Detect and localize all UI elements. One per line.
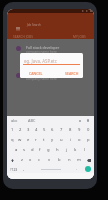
- button[interactable]: Voice input: [85, 118, 90, 123]
- button[interactable]: 5: [40, 125, 48, 135]
- staticText: 1: [11, 127, 14, 133]
- button[interactable]: a: [12, 145, 20, 155]
- button[interactable]: v: [44, 155, 54, 165]
- staticText: c: [38, 157, 41, 163]
- button[interactable]: 3: [24, 125, 32, 135]
- button[interactable]: l: [80, 145, 89, 155]
- staticText: j: [66, 147, 68, 153]
- button[interactable]: b: [54, 155, 64, 165]
- button[interactable]: 7: [57, 125, 66, 135]
- staticText: b: [58, 157, 61, 163]
- staticText: company name here: [26, 77, 57, 81]
- button[interactable]: 2: [16, 125, 24, 135]
- staticText: i: [70, 137, 72, 143]
- staticText: SEARCH: [65, 71, 79, 76]
- staticText: r: [35, 137, 37, 143]
- button[interactable]: SEARCH: [65, 71, 79, 76]
- staticText: abc: [11, 118, 18, 123]
- staticText: Job Search: [27, 23, 41, 27]
- button[interactable]: 0: [84, 125, 93, 135]
- button[interactable]: y: [48, 135, 57, 145]
- button[interactable]: p: [84, 135, 93, 145]
- staticText: e: [27, 137, 30, 143]
- staticText: ?123: [10, 167, 18, 172]
- button[interactable]: g: [44, 145, 53, 155]
- staticText: a: [15, 147, 18, 153]
- staticText: z: [21, 157, 23, 163]
- staticText: 3: [27, 127, 30, 133]
- button[interactable]: x: [26, 155, 35, 165]
- staticText: SEARCH JOBS: [13, 35, 33, 39]
- button[interactable]: .: [73, 165, 81, 173]
- button[interactable]: Enter: [81, 165, 94, 173]
- staticText: q: [11, 137, 14, 143]
- button[interactable]: 1: [8, 125, 16, 135]
- staticText: t: [43, 137, 45, 143]
- button[interactable]: w: [16, 135, 24, 145]
- button[interactable]: h: [53, 145, 62, 155]
- button[interactable]: SEARCH JOBS: [13, 35, 33, 39]
- staticText: g: [47, 147, 50, 153]
- staticText: v: [48, 157, 51, 163]
- button[interactable]: k: [71, 145, 80, 155]
- staticText: n: [68, 157, 71, 163]
- button[interactable]: 9: [75, 125, 84, 135]
- button[interactable]: CANCEL: [29, 71, 43, 76]
- button[interactable]: z: [17, 155, 26, 165]
- staticText: Full stack developer: [26, 72, 60, 77]
- button[interactable]: o: [75, 135, 84, 145]
- staticText: MY JOBS: [73, 35, 86, 39]
- staticText: Full stack developer: [26, 45, 60, 50]
- button[interactable]: Full stack developer: [7, 39, 94, 66]
- staticText: 0: [87, 127, 90, 133]
- staticText: d: [31, 147, 34, 153]
- staticText: company name here: [26, 50, 57, 54]
- staticText: eg. Java, ASP.etc: [24, 58, 57, 64]
- button[interactable]: d: [28, 145, 36, 155]
- button[interactable]: n: [64, 155, 74, 165]
- button[interactable]: ?123: [7, 165, 20, 173]
- staticText: CANCEL: [29, 71, 43, 76]
- button[interactable]: m: [74, 155, 84, 165]
- button[interactable]: 6: [48, 125, 57, 135]
- button[interactable]: c: [35, 155, 44, 165]
- staticText: ,: [23, 166, 25, 172]
- button[interactable]: 4: [32, 125, 40, 135]
- staticText: h: [56, 147, 59, 153]
- staticText: .: [76, 166, 78, 172]
- button[interactable]: e: [24, 135, 32, 145]
- button[interactable]: q: [8, 135, 16, 145]
- button[interactable]: u: [57, 135, 66, 145]
- button[interactable]: s: [20, 145, 28, 155]
- staticText: 9: [78, 127, 81, 133]
- staticText: f: [39, 147, 41, 153]
- button[interactable]: ,: [20, 165, 28, 173]
- staticText: w: [18, 137, 22, 143]
- staticText: ABC: [28, 118, 36, 123]
- staticText: 5: [43, 127, 46, 133]
- staticText: 4: [35, 127, 38, 133]
- button[interactable]: Space: [28, 165, 73, 173]
- button[interactable]: Full stack developer: [7, 66, 94, 93]
- button[interactable]: i: [66, 135, 75, 145]
- button[interactable]: j: [62, 145, 71, 155]
- staticText: p: [87, 137, 90, 143]
- staticText: y: [51, 137, 54, 143]
- staticText: 6: [51, 127, 54, 133]
- staticText: m: [77, 157, 81, 163]
- staticText: k: [74, 147, 77, 153]
- button[interactable]: f: [36, 145, 44, 155]
- staticText: 7: [60, 127, 63, 133]
- button[interactable]: 8: [66, 125, 75, 135]
- button[interactable]: t: [40, 135, 48, 145]
- button[interactable]: Navigate up: [13, 24, 23, 32]
- button[interactable]: Settings: [77, 118, 82, 123]
- button[interactable]: Backspace: [84, 155, 94, 165]
- staticText: o: [78, 137, 81, 143]
- button[interactable]: r: [32, 135, 40, 145]
- button[interactable]: Shift: [7, 155, 17, 165]
- staticText: 2: [19, 127, 22, 133]
- staticText: u: [60, 137, 63, 143]
- staticText: x: [29, 157, 32, 163]
- button[interactable]: MY JOBS: [73, 35, 86, 39]
